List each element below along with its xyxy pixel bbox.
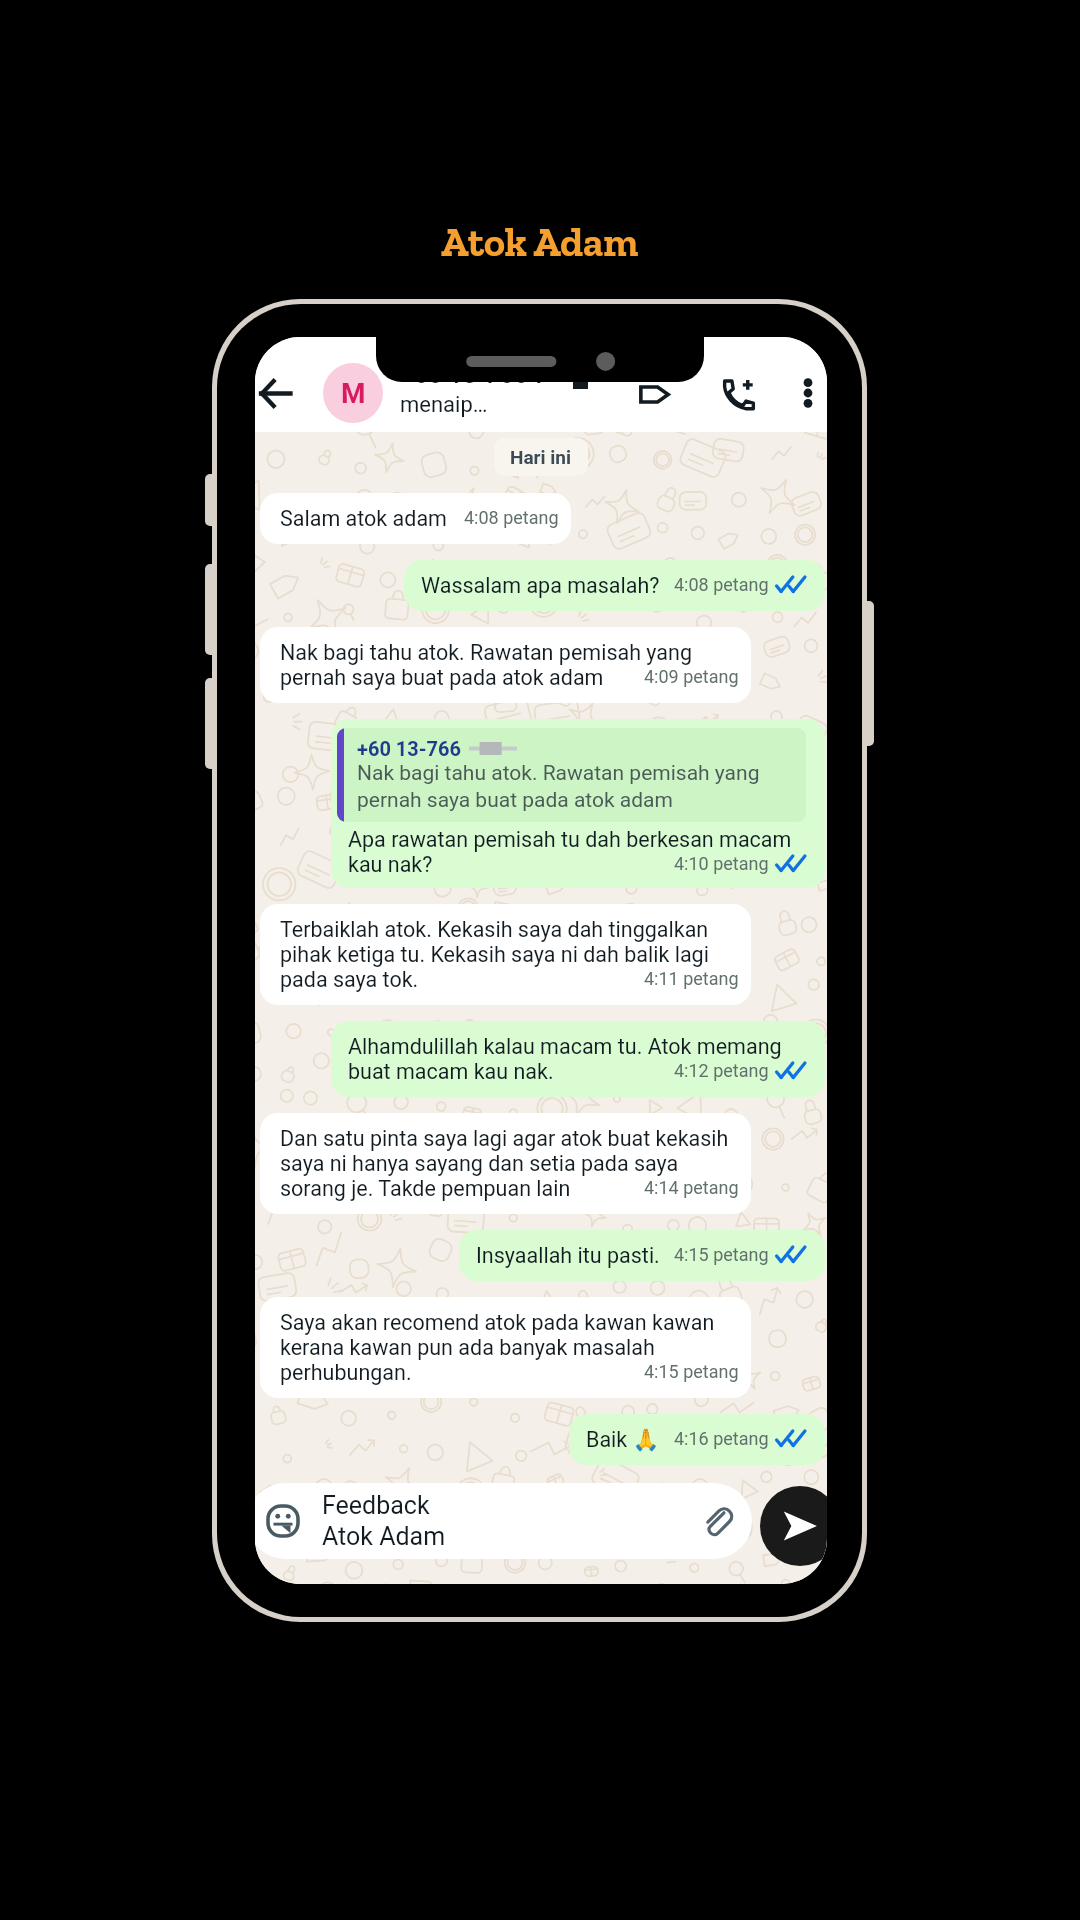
staticText: Wassalam apa masalah? xyxy=(421,573,660,598)
staticText: 4:09 petang xyxy=(644,666,739,687)
staticText: pihak ketiga tu. Kekasih saya ni dah bal… xyxy=(280,942,709,967)
staticText: Alhamdulillah kalau macam tu. Atok meman… xyxy=(348,1034,782,1059)
button[interactable]: Wassalam apa masalah? xyxy=(404,560,825,611)
staticText: Atok Adam xyxy=(441,218,639,266)
button[interactable]: Label xyxy=(630,370,678,418)
staticText: kerana kawan pun ada banyak masalah xyxy=(280,1335,655,1360)
staticText: pada saya tok. xyxy=(280,967,419,992)
staticText: 4:16 petang xyxy=(674,1428,769,1449)
staticText: Apa rawatan pemisah tu dah berkesan maca… xyxy=(348,827,792,852)
staticText: 4:08 petang xyxy=(674,574,769,595)
staticText: Feedback xyxy=(322,1491,430,1520)
button[interactable]: Hari ini xyxy=(494,438,588,476)
button[interactable]: Add call xyxy=(714,369,762,417)
staticText: Salam atok adam xyxy=(280,506,447,531)
staticText: menaip… xyxy=(400,392,488,418)
staticText: 4:15 petang xyxy=(644,1361,739,1382)
staticText: Hari ini xyxy=(510,446,572,468)
button[interactable]: More options xyxy=(788,373,827,413)
button[interactable]: Dan satu pinta saya lagi agar atok buat … xyxy=(260,1113,751,1214)
staticText: kau nak? xyxy=(348,852,433,877)
staticText: 4:08 petang xyxy=(464,507,559,528)
button[interactable]: Alhamdulillah kalau macam tu. Atok meman… xyxy=(331,1021,825,1097)
staticText: 4:14 petang xyxy=(644,1177,739,1198)
staticText: 4:11 petang xyxy=(644,968,739,989)
button[interactable]: Terbaiklah atok. Kekasih saya dah tingga… xyxy=(260,904,751,1005)
staticText: pernah saya buat pada atok adam xyxy=(280,665,604,690)
staticText: 4:10 petang xyxy=(674,853,769,874)
staticText: Atok Adam xyxy=(322,1522,446,1551)
staticText: 4:12 petang xyxy=(674,1060,769,1081)
staticText: Baik 🙏 xyxy=(586,1427,660,1452)
staticText: sorang je. Takde pempuan lain xyxy=(280,1176,571,1201)
button[interactable]: Feedback xyxy=(255,1483,752,1559)
staticText: Insyaallah itu pasti. xyxy=(476,1243,660,1268)
staticText: Terbaiklah atok. Kekasih saya dah tingga… xyxy=(280,917,709,942)
button[interactable]: Back xyxy=(255,365,303,421)
button[interactable]: Nak bagi tahu atok. Rawatan pemisah yang xyxy=(260,627,751,703)
other: Attach xyxy=(701,1506,732,1537)
staticText: saya ni hanya sayang dan setia pada saya xyxy=(280,1151,679,1176)
staticText: Saya akan recomend atok pada kawan kawan xyxy=(280,1310,715,1335)
button[interactable]: +60 13-766 xyxy=(331,719,825,888)
staticText: Nak bagi tahu atok. Rawatan pemisah yang xyxy=(280,640,693,665)
button[interactable]: Baik 🙏 xyxy=(569,1414,825,1465)
button[interactable]: Salam atok adam xyxy=(260,493,571,544)
button[interactable]: Send xyxy=(760,1486,827,1566)
staticText: 4:15 petang xyxy=(674,1244,769,1265)
button[interactable]: Saya akan recomend atok pada kawan kawan xyxy=(260,1297,751,1398)
staticText: buat macam kau nak. xyxy=(348,1059,554,1084)
staticText: perhubungan. xyxy=(280,1360,412,1385)
staticText: M xyxy=(341,377,366,410)
button[interactable]: Insyaallah itu pasti. xyxy=(459,1230,825,1281)
staticText: +60 13-766 xyxy=(357,737,461,760)
staticText: Nak bagi tahu atok. Rawatan pemisah yang… xyxy=(357,761,760,812)
staticText: +60 13-766 7 xyxy=(400,360,549,389)
staticText: Dan satu pinta saya lagi agar atok buat … xyxy=(280,1126,729,1151)
